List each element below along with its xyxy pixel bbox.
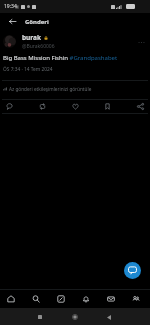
button[interactable]: Home bbox=[69, 311, 81, 323]
button[interactable]: Bookmark bbox=[101, 100, 114, 113]
staticText: Big Bass Mission Fishin #Grandpashabet bbox=[3, 54, 118, 62]
button[interactable]: Messages bbox=[103, 291, 119, 307]
staticText: ÖS 7:34 · 14 Tem 2024 bbox=[3, 66, 53, 73]
staticText: Gönderi bbox=[25, 18, 49, 26]
button[interactable]: Back bbox=[103, 311, 115, 323]
staticText: Az gönderi etkileşimlerinizi görüntüle bbox=[9, 86, 92, 92]
button[interactable]: Profile bbox=[128, 291, 144, 307]
button[interactable]: Like bbox=[69, 100, 82, 113]
button[interactable]: Home bbox=[3, 291, 19, 307]
button[interactable]: More options bbox=[136, 37, 146, 47]
staticText: 19:34 bbox=[4, 3, 17, 10]
button[interactable]: Back bbox=[4, 13, 21, 30]
staticText: burak bbox=[22, 33, 42, 42]
button[interactable]: Recents bbox=[34, 311, 46, 323]
button[interactable]: Repost bbox=[36, 100, 49, 113]
button[interactable]: Search bbox=[28, 291, 44, 307]
staticText: @Burak60006 bbox=[22, 43, 55, 50]
button[interactable]: Share bbox=[134, 100, 147, 113]
button[interactable]: Communities bbox=[53, 291, 69, 307]
button[interactable]: New message bbox=[124, 262, 141, 279]
button[interactable]: Notifications bbox=[78, 291, 94, 307]
button[interactable]: Reply bbox=[3, 100, 16, 113]
